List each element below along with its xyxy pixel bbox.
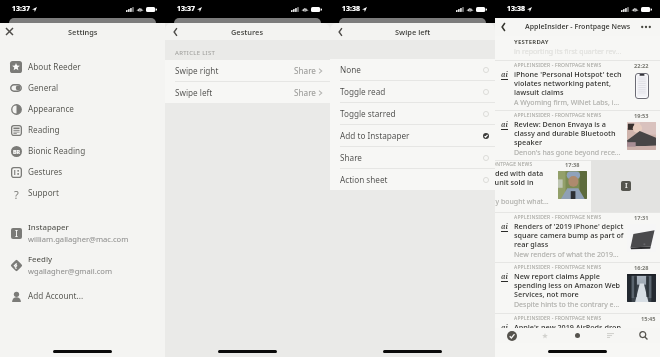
staticText: Instapaper bbox=[28, 222, 69, 233]
staticText: in reporting its first quarter rev... bbox=[514, 47, 622, 57]
staticText: Gestures bbox=[28, 166, 63, 177]
staticText: Action sheet bbox=[340, 174, 388, 185]
button[interactable]: Search bbox=[627, 328, 660, 343]
button[interactable]: Reading bbox=[0, 119, 165, 140]
staticText: wgallagher@gmail.com bbox=[28, 266, 113, 276]
button[interactable]: Feedly bbox=[0, 249, 165, 281]
staticText: Apple's new 2019 AirPods drop bbox=[514, 322, 621, 328]
staticText: Users who really bought what... bbox=[495, 197, 549, 207]
staticText: Reading bbox=[28, 124, 60, 135]
staticText: 17:38 bbox=[565, 161, 580, 169]
staticText: ? bbox=[14, 187, 19, 199]
staticText: AppleInsider - Frontpage News bbox=[525, 22, 631, 32]
button[interactable]: Back bbox=[500, 18, 513, 36]
button[interactable]: 19:53 bbox=[495, 110, 660, 160]
button[interactable]: Gestures bbox=[0, 161, 165, 182]
staticText: 17:31 bbox=[634, 214, 649, 222]
staticText: 13:38 bbox=[507, 4, 525, 14]
staticText: New renders of what the 2019... bbox=[514, 250, 619, 260]
staticText: iPad boxes loaded with data reportedly n… bbox=[495, 168, 544, 196]
button[interactable]: 15:45 bbox=[495, 313, 660, 328]
button[interactable]: Back bbox=[171, 23, 185, 40]
button[interactable]: None bbox=[330, 59, 495, 80]
staticText: Despite hints to the contrary e... bbox=[514, 300, 620, 310]
button[interactable]: Swipe left bbox=[165, 82, 330, 103]
staticText: General bbox=[28, 82, 59, 93]
button[interactable]: Mark all read bbox=[495, 328, 528, 343]
staticText: 16:28 bbox=[634, 264, 649, 272]
staticText: I bbox=[15, 228, 18, 239]
staticText: Bionic Reading bbox=[28, 145, 86, 156]
staticText: Settings bbox=[68, 27, 98, 37]
button[interactable]: Add to Instapaper bbox=[330, 125, 495, 146]
button[interactable]: All articles bbox=[594, 328, 627, 343]
button[interactable]: 17:31 bbox=[495, 212, 660, 262]
staticText: ai bbox=[501, 120, 508, 129]
staticText: Review: Denon Envaya is a classy and dur… bbox=[514, 119, 625, 147]
button[interactable]: Close bbox=[6, 23, 19, 40]
staticText: APPLEINSIDER - FRONTPAGE NEWS bbox=[514, 264, 602, 271]
button[interactable]: Starred bbox=[528, 328, 561, 343]
button[interactable]: Action sheet bbox=[330, 169, 495, 190]
staticText: APPLEINSIDER - FRONTPAGE NEWS bbox=[514, 112, 602, 119]
staticText: Swipe left bbox=[175, 87, 213, 98]
button[interactable]: BR bbox=[0, 140, 165, 161]
staticText: 19:53 bbox=[634, 112, 649, 120]
staticText: Swipe right bbox=[175, 65, 219, 76]
button[interactable]: Back bbox=[336, 23, 350, 40]
button[interactable]: Add to Instapaper bbox=[591, 160, 660, 212]
button[interactable]: ? bbox=[0, 182, 165, 203]
staticText: Appearance bbox=[28, 103, 74, 114]
staticText: Share bbox=[294, 65, 316, 76]
staticText: iPhone 'Personal Hotspot' tech violates … bbox=[514, 69, 625, 97]
staticText: william.gallagher@mac.com bbox=[28, 234, 129, 244]
staticText: None bbox=[340, 64, 361, 75]
button[interactable]: Unread bbox=[561, 328, 594, 343]
staticText: About Reeder bbox=[28, 61, 81, 72]
staticText: ai bbox=[501, 323, 508, 328]
staticText: I bbox=[625, 181, 628, 191]
button[interactable]: 16:28 bbox=[495, 262, 660, 313]
staticText: APPLEINSIDER - FRONTPAGE NEWS bbox=[514, 62, 602, 69]
staticText: APPLEINSIDER - FRONTPAGE NEWS bbox=[514, 315, 602, 322]
staticText: 13:38 bbox=[342, 4, 360, 14]
staticText: Toggle read bbox=[340, 86, 386, 97]
button[interactable]: Toggle read bbox=[330, 81, 495, 102]
staticText: Share bbox=[340, 152, 362, 163]
staticText: BR bbox=[13, 148, 20, 155]
button[interactable]: About Reeder bbox=[0, 56, 165, 77]
staticText: ARTICLE LIST bbox=[175, 49, 216, 57]
staticText: New report claims Apple spending less on… bbox=[514, 271, 625, 299]
button[interactable]: I bbox=[0, 217, 165, 249]
staticText: Share bbox=[294, 87, 316, 98]
staticText: ai bbox=[501, 70, 508, 79]
staticText: 13:37 bbox=[12, 4, 30, 14]
button[interactable]: Appearance bbox=[0, 98, 165, 119]
staticText: 15:45 bbox=[641, 315, 656, 323]
staticText: Support bbox=[28, 187, 59, 198]
staticText: Renders of '2019 iPhone' depict square c… bbox=[514, 221, 625, 249]
staticText: A Wyoming firm, WiNet Labs, i... bbox=[514, 98, 620, 108]
button[interactable]: Swipe right bbox=[165, 60, 330, 81]
button[interactable]: Toggle starred bbox=[330, 103, 495, 124]
staticText: APPLEINSIDER - FRONTPAGE NEWS bbox=[514, 214, 602, 221]
staticText: Gestures bbox=[231, 27, 264, 37]
staticText: ai bbox=[501, 222, 508, 231]
staticText: Denon's has gone beyond rece... bbox=[514, 148, 621, 158]
staticText: APPLEINSIDER - FRONTPAGE NEWS bbox=[495, 161, 533, 168]
button[interactable]: Add Account... bbox=[0, 285, 165, 306]
staticText: Add Account... bbox=[28, 290, 84, 301]
staticText: Add to Instapaper bbox=[340, 130, 410, 141]
button[interactable]: General bbox=[0, 77, 165, 98]
staticText: YESTERDAY bbox=[514, 38, 549, 46]
staticText: 13:37 bbox=[177, 4, 195, 14]
staticText: Feedly bbox=[28, 254, 53, 265]
button[interactable]: 17:38 bbox=[495, 161, 591, 207]
staticText: ai bbox=[501, 272, 508, 281]
staticText: Swipe left bbox=[395, 27, 431, 37]
button[interactable]: 22:22 bbox=[495, 60, 660, 110]
staticText: 22:22 bbox=[634, 62, 649, 70]
button[interactable]: Share bbox=[330, 147, 495, 168]
button[interactable]: More options bbox=[638, 19, 654, 35]
staticText: Toggle starred bbox=[340, 108, 396, 119]
